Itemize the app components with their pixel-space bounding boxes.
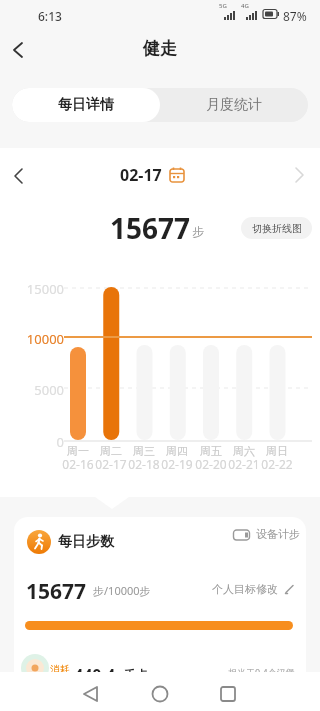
button[interactable]: 月度统计	[160, 88, 308, 122]
button[interactable]: 切换折线图	[241, 217, 312, 239]
staticText: 02-20	[192, 456, 230, 472]
staticText: 02-18	[125, 456, 163, 472]
staticText: 87%	[283, 8, 307, 24]
staticText: 千卡	[124, 667, 148, 682]
staticText: 5G	[219, 2, 227, 10]
staticText: 步/10000步	[93, 583, 151, 598]
staticText: 周五	[194, 444, 228, 458]
staticText: 15677	[108, 209, 192, 247]
staticText: 设备计步	[256, 527, 300, 541]
staticText: 周三	[127, 444, 161, 458]
staticText: 周日	[260, 444, 294, 458]
button[interactable]: 02-17	[110, 162, 210, 190]
staticText: 消耗	[50, 663, 70, 676]
staticText: 02-19	[158, 456, 196, 472]
staticText: 02-17	[120, 164, 162, 186]
button[interactable]	[203, 678, 253, 708]
button[interactable]: 每日详情	[12, 88, 160, 122]
staticText: 个人目标修改	[212, 582, 278, 596]
button[interactable]	[66, 678, 116, 708]
staticText: 02-21	[225, 456, 263, 472]
staticText: 0	[14, 433, 64, 451]
staticText: 每日步数	[58, 533, 114, 551]
staticText: 周四	[160, 444, 194, 458]
staticText: 5000	[14, 381, 64, 399]
staticText: 02-17	[92, 456, 130, 472]
staticText: 10000	[14, 330, 64, 348]
staticText: 15677	[26, 577, 87, 606]
staticText: 相当于0.4个汉堡	[228, 666, 295, 678]
button[interactable]	[135, 678, 185, 708]
staticText: 周六	[227, 444, 261, 458]
staticText: 6:13	[38, 8, 62, 24]
staticText: 周一	[61, 444, 95, 458]
staticText: 02-22	[258, 456, 296, 472]
staticText: 02-16	[59, 456, 97, 472]
button[interactable]: 个人目标修改	[212, 580, 302, 598]
button[interactable]: 设备计步	[230, 526, 300, 546]
staticText: 切换折线图	[252, 222, 302, 235]
staticText: 月度统计	[206, 96, 262, 114]
staticText: 15000	[14, 280, 64, 298]
staticText: 每日详情	[58, 96, 114, 114]
button[interactable]	[4, 36, 40, 64]
button[interactable]	[4, 162, 36, 190]
staticText: 健走	[0, 38, 320, 59]
staticText: 步	[192, 224, 204, 239]
staticText: 周二	[94, 444, 128, 458]
staticText: 4G	[241, 2, 249, 10]
staticText: 440.4	[74, 664, 116, 686]
